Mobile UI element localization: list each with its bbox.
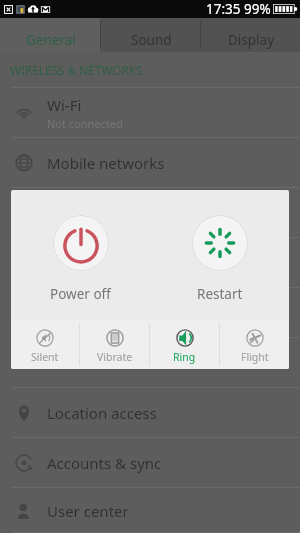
button[interactable]: Power off: [11, 190, 150, 320]
button[interactable]: [0, 338, 300, 388]
staticText: Restart: [197, 285, 243, 303]
button[interactable]: Vibrate: [80, 320, 149, 369]
button[interactable]: Wi-Fi: [0, 88, 300, 138]
staticText: User center: [47, 501, 129, 521]
staticText: Sound: [131, 31, 172, 49]
staticText: 99%: [244, 0, 271, 18]
button[interactable]: Display: [201, 18, 300, 52]
staticText: Silent: [31, 350, 59, 364]
staticText: Not connected: [47, 116, 123, 131]
staticText: Accounts & sync: [47, 453, 162, 473]
staticText: Ring: [173, 350, 196, 364]
staticText: General: [26, 31, 76, 49]
staticText: More: [47, 203, 85, 223]
button[interactable]: Display: [0, 288, 300, 338]
staticText: 17:35: [206, 0, 241, 18]
staticText: Flight: [241, 350, 269, 364]
staticText: Vibrate: [97, 350, 133, 364]
staticText: Wi-Fi: [47, 95, 82, 115]
button[interactable]: Accounts & sync: [0, 438, 300, 488]
button[interactable]: Restart: [150, 190, 289, 320]
staticText: Location access: [47, 403, 157, 423]
staticText: Mobile networks: [47, 153, 165, 173]
button[interactable]: Sound: [101, 18, 200, 52]
button[interactable]: Flight: [220, 320, 289, 369]
button[interactable]: Mobile networks: [0, 138, 300, 188]
button[interactable]: General: [0, 18, 100, 52]
staticText: Sound: [47, 253, 93, 273]
button[interactable]: User center: [0, 488, 300, 533]
button[interactable]: Sound: [0, 238, 300, 288]
button[interactable]: Ring: [150, 320, 219, 369]
button[interactable]: Silent: [11, 320, 79, 369]
staticText: Display: [228, 31, 275, 49]
button[interactable]: Location access: [0, 388, 300, 438]
button[interactable]: More: [0, 188, 300, 238]
staticText: Power off: [50, 285, 111, 303]
staticText: WIRELESS & NETWORKS: [10, 62, 143, 78]
